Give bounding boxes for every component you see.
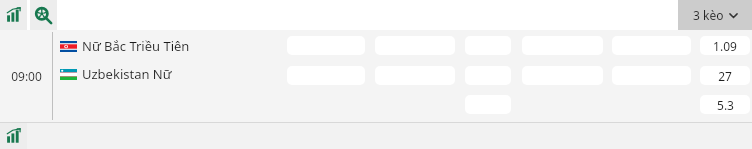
staticText: Nữ Bắc Triều Tiên (82, 37, 190, 55)
staticText: 27 (718, 68, 732, 84)
button[interactable]: Statistics (0, 123, 27, 149)
button[interactable]: 5.3 (700, 95, 750, 114)
button[interactable]: 27 (700, 66, 750, 85)
button[interactable]: Statistics (0, 0, 27, 30)
staticText: 1.09 (713, 38, 737, 54)
button[interactable]: 09:00 (0, 30, 752, 122)
staticText: Uzbekistan Nữ (82, 65, 172, 83)
button[interactable]: 3 kèo (678, 0, 752, 30)
staticText: 09:00 (11, 68, 42, 84)
staticText: 5.3 (717, 97, 734, 113)
button[interactable]: 1.09 (700, 36, 750, 55)
button[interactable]: Search match (30, 0, 57, 30)
staticText: 3 kèo (693, 7, 724, 23)
